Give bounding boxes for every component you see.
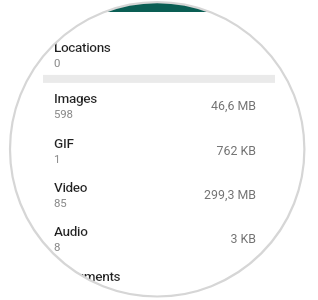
staticText: Locations bbox=[54, 39, 111, 55]
button[interactable]: Locations bbox=[0, 31, 318, 75]
staticText: 762 KB bbox=[216, 143, 256, 158]
button[interactable]: Audio bbox=[0, 215, 318, 259]
staticText: 3 KB bbox=[230, 231, 256, 246]
staticText: 299,3 MB bbox=[204, 187, 256, 202]
staticText: 8 bbox=[54, 240, 61, 253]
staticText: 1 bbox=[54, 152, 61, 165]
staticText: Video bbox=[54, 179, 88, 195]
staticText: 46,6 MB bbox=[211, 98, 256, 113]
staticText: 598 bbox=[54, 107, 73, 120]
staticText: 0 bbox=[54, 56, 61, 69]
staticText: Images bbox=[54, 90, 97, 106]
button[interactable]: Video bbox=[0, 171, 318, 215]
button[interactable]: Documents bbox=[0, 260, 318, 300]
staticText: 85 bbox=[54, 196, 67, 209]
staticText: Documents bbox=[54, 268, 121, 284]
button[interactable]: GIF bbox=[0, 127, 318, 171]
staticText: GIF bbox=[54, 135, 74, 151]
button[interactable]: Images bbox=[0, 82, 318, 126]
staticText: 4 KB bbox=[230, 276, 256, 291]
staticText: Audio bbox=[54, 223, 88, 239]
